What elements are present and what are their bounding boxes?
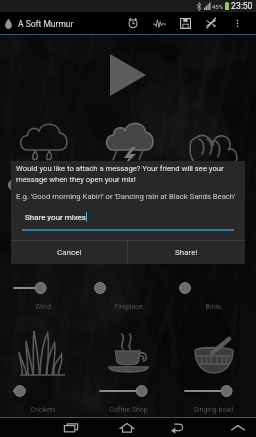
button[interactable]: Fireplace [86,222,171,312]
staticText: A Soft Murmur [18,19,74,29]
button[interactable]: Play [106,53,150,97]
button[interactable]: Recent apps [50,418,92,437]
button[interactable]: Home [106,418,148,437]
button[interactable]: Waveform [146,12,172,34]
staticText: Crickets [0,406,86,414]
button[interactable]: Thunder [86,119,171,209]
button[interactable]: Rain [0,119,86,209]
button[interactable]: Birds [171,222,256,312]
button[interactable]: Waves [171,119,256,209]
button[interactable]: Singing bowl [171,325,256,415]
button[interactable]: Shuffle off [198,12,224,34]
staticText: Birds [171,303,256,311]
button[interactable]: Coffee Shop [86,325,171,415]
button[interactable]: Crickets [0,325,86,415]
staticText: Coffee Shop [86,406,171,414]
staticText: Rain [0,200,86,208]
button[interactable]: Cancel [11,241,127,264]
staticText: Share your mixes [25,213,86,222]
staticText: Wind [0,303,86,311]
staticText: E.g. 'Good morning Kabir!' or 'Dancing r… [16,192,245,201]
staticText: Cancel [57,248,82,257]
button[interactable]: A Soft Murmur [4,18,74,29]
staticText: Fireplace [86,303,171,311]
button[interactable]: Show menu [217,418,256,437]
button[interactable]: Save mix [172,12,198,34]
staticText: Would you like to attach a message? Your… [16,164,242,184]
staticText: 45% [212,3,224,10]
button[interactable]: Back [156,418,198,437]
button[interactable]: Wind [0,222,86,312]
staticText: Share! [175,248,198,257]
staticText: Thunder [86,200,171,208]
staticText: Waves [171,200,256,208]
button[interactable]: Sleep timer [120,12,146,34]
staticText: Singing bowl [171,406,256,414]
button[interactable]: More options [224,12,250,34]
button[interactable]: Share! [128,241,245,264]
staticText: 23:50 [229,1,253,11]
